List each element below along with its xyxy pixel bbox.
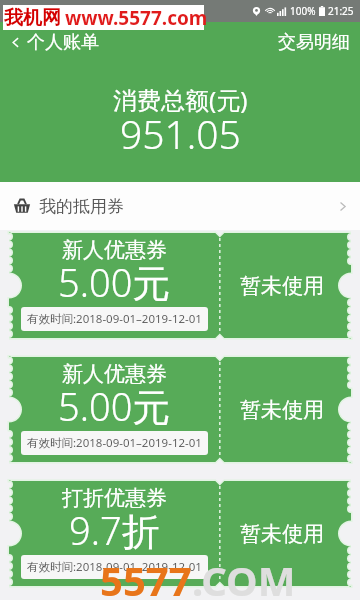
button[interactable]: 新人优惠券 <box>9 233 351 338</box>
staticText: www.5577.com <box>65 5 208 30</box>
staticText: .COM <box>192 553 296 600</box>
staticText: 打折优惠券 <box>62 485 167 511</box>
staticText: 交易明细 <box>278 31 350 54</box>
staticText: 有效时间:2018-09-01–2019-12-01 <box>27 435 202 451</box>
button[interactable]: 打折优惠券 <box>9 481 351 586</box>
button[interactable]: 新人优惠券 <box>9 357 351 462</box>
staticText: 5.00元 <box>58 380 171 432</box>
staticText: 新人优惠券 <box>62 361 167 387</box>
staticText: 暂未使用 <box>240 273 324 299</box>
staticText: 新人优惠券 <box>62 237 167 263</box>
other: More coupons <box>337 201 348 212</box>
staticText: 9.7折 <box>69 504 160 556</box>
staticText: 个人账单 <box>27 31 99 54</box>
staticText: 暂未使用 <box>240 397 324 423</box>
staticText: 有效时间:2018-09-01–2019-12-01 <box>27 311 202 327</box>
staticText: 消费总额(元) <box>113 83 248 116</box>
staticText: 有效时间:2018-09-01–2019-12-01 <box>27 559 202 575</box>
staticText: 951.05 <box>120 107 241 160</box>
button[interactable]: Back <box>0 31 111 54</box>
staticText: 5577 <box>100 553 192 600</box>
staticText: 100% <box>290 4 316 18</box>
staticText: 暂未使用 <box>240 521 324 547</box>
button[interactable]: 我的抵用券 <box>0 182 360 230</box>
staticText: 我机网 <box>4 6 61 30</box>
button[interactable]: 交易明细 <box>268 25 360 60</box>
staticText: 5.00元 <box>58 256 171 308</box>
other: Back <box>9 36 22 49</box>
staticText: 21:25 <box>328 4 354 18</box>
staticText: 我的抵用券 <box>39 196 124 217</box>
